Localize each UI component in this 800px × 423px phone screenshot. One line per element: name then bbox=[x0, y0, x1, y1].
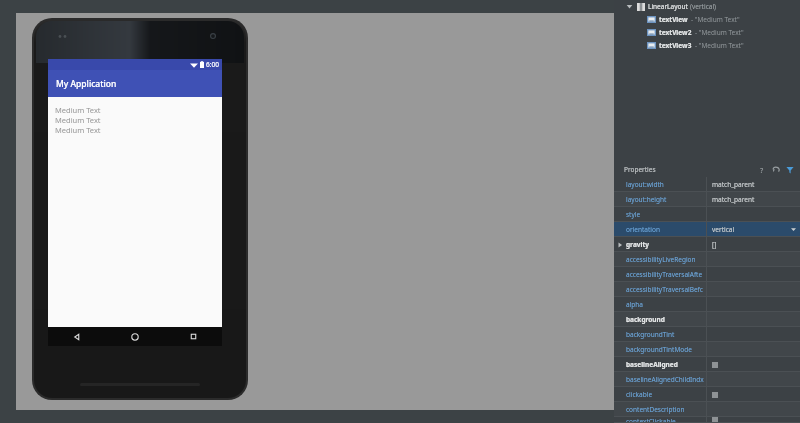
button[interactable]: layout:height bbox=[614, 192, 800, 207]
staticText: ? bbox=[760, 165, 764, 175]
staticText: backgroundTint bbox=[626, 330, 675, 339]
button[interactable]: Toggle contextClickable bbox=[712, 417, 718, 423]
button[interactable]: layout:width bbox=[614, 177, 800, 192]
button[interactable]: textView3 bbox=[614, 39, 800, 52]
staticText: match_parent bbox=[712, 180, 755, 189]
staticText: accessibilityTraversalAfte bbox=[626, 270, 703, 279]
staticText: 6:00 bbox=[206, 60, 219, 69]
staticText: textView bbox=[659, 15, 688, 24]
staticText: textView2 bbox=[659, 28, 692, 37]
staticText: - "Medium Text" bbox=[695, 41, 744, 50]
button[interactable]: baselineAligned bbox=[614, 357, 800, 372]
button[interactable]: contextClickable bbox=[614, 417, 800, 423]
staticText: match_parent bbox=[712, 195, 755, 204]
button[interactable]: backgroundTintMode bbox=[614, 342, 800, 357]
button[interactable]: Back bbox=[48, 327, 106, 346]
staticText: (vertical) bbox=[690, 2, 717, 11]
button[interactable]: backgroundTint bbox=[614, 327, 800, 342]
staticText: background bbox=[626, 315, 665, 324]
staticText: Properties bbox=[624, 165, 656, 174]
staticText: Medium Text bbox=[55, 105, 101, 115]
button[interactable]: Reset bbox=[769, 163, 783, 177]
button[interactable]: orientation bbox=[614, 222, 800, 237]
button[interactable]: accessibilityLiveRegion bbox=[614, 252, 800, 267]
button[interactable]: baselineAlignedChildIndx bbox=[614, 372, 800, 387]
staticText: gravity bbox=[626, 240, 649, 249]
staticText: contentDescription bbox=[626, 405, 685, 414]
staticText: alpha bbox=[626, 300, 643, 309]
staticText: - "Medium Text" bbox=[691, 15, 740, 24]
button[interactable]: accessibilityTraversalAfte bbox=[614, 267, 800, 282]
button[interactable]: Home bbox=[106, 327, 164, 346]
staticText: accessibilityLiveRegion bbox=[626, 255, 696, 264]
button[interactable]: contentDescription bbox=[614, 402, 800, 417]
button[interactable]: accessibilityTraversalBefc bbox=[614, 282, 800, 297]
button[interactable]: textView bbox=[614, 13, 800, 26]
button[interactable]: LinearLayout bbox=[614, 0, 800, 13]
staticText: style bbox=[626, 210, 641, 219]
staticText: textView3 bbox=[659, 41, 692, 50]
button[interactable]: Filter bbox=[783, 163, 797, 177]
button[interactable]: background bbox=[614, 312, 800, 327]
button[interactable]: style bbox=[614, 207, 800, 222]
staticText: vertical bbox=[712, 225, 735, 234]
button[interactable]: gravity bbox=[614, 237, 800, 252]
button[interactable]: Recents bbox=[164, 327, 222, 346]
staticText: baselineAligned bbox=[626, 360, 678, 369]
staticText: - "Medium Text" bbox=[695, 28, 744, 37]
staticText: Medium Text bbox=[55, 125, 101, 135]
button[interactable]: Help bbox=[755, 163, 769, 177]
staticText: baselineAlignedChildIndx bbox=[626, 375, 704, 384]
staticText: orientation bbox=[626, 225, 660, 234]
staticText: My Application bbox=[56, 78, 117, 90]
button[interactable]: clickable bbox=[614, 387, 800, 402]
staticText: backgroundTintMode bbox=[626, 345, 692, 354]
button[interactable]: textView2 bbox=[614, 26, 800, 39]
staticText: Medium Text bbox=[55, 115, 101, 125]
staticText: [] bbox=[712, 240, 717, 249]
button[interactable]: alpha bbox=[614, 297, 800, 312]
staticText: layout:height bbox=[626, 195, 667, 204]
staticText: clickable bbox=[626, 390, 653, 399]
staticText: LinearLayout bbox=[648, 2, 688, 11]
staticText: accessibilityTraversalBefc bbox=[626, 285, 703, 294]
staticText: contextClickable bbox=[626, 417, 676, 423]
staticText: layout:width bbox=[626, 180, 664, 189]
